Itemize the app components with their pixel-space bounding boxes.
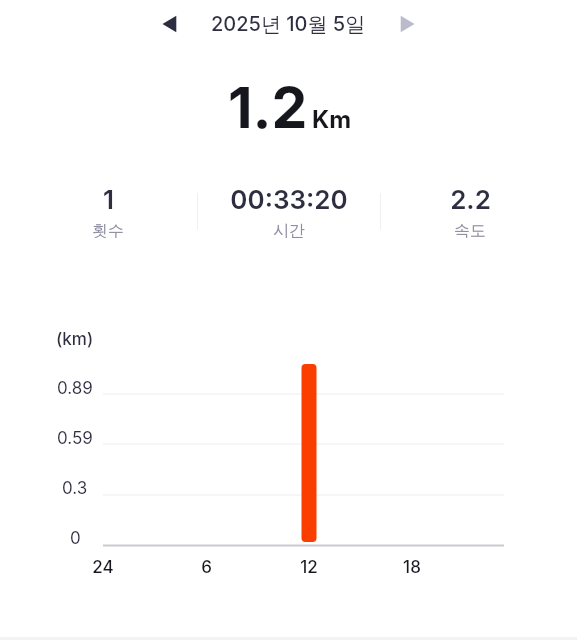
staticText: 18 bbox=[403, 557, 421, 578]
staticText: 0 bbox=[70, 528, 81, 549]
staticText: 0.89 bbox=[57, 378, 93, 399]
staticText: 1 bbox=[103, 184, 114, 215]
staticText: 1.2 bbox=[228, 73, 308, 142]
staticText: (km) bbox=[56, 329, 94, 350]
button[interactable]: 1 bbox=[38, 184, 178, 242]
button[interactable]: 2.2 bbox=[400, 184, 540, 242]
staticText: 0.3 bbox=[62, 478, 88, 499]
staticText: 2025년 10월 5일 bbox=[211, 12, 366, 37]
button[interactable]: Previous day bbox=[153, 7, 187, 41]
staticText: 12 bbox=[300, 557, 318, 578]
button[interactable]: 00:33:20 bbox=[219, 184, 359, 242]
staticText: 00:33:20 bbox=[230, 184, 348, 215]
staticText: 횟수 bbox=[92, 221, 124, 241]
staticText: 6 bbox=[201, 557, 212, 578]
staticText: Km bbox=[312, 105, 352, 134]
staticText: 24 bbox=[92, 557, 114, 578]
staticText: 2.2 bbox=[450, 184, 491, 215]
staticText: 0.59 bbox=[57, 428, 93, 449]
staticText: 속도 bbox=[454, 221, 486, 241]
button[interactable]: Next day bbox=[390, 7, 424, 41]
staticText: 시간 bbox=[273, 221, 305, 241]
